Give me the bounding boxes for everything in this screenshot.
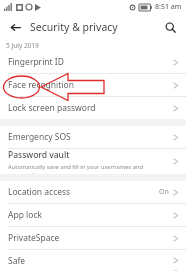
staticText: Safe (8, 255, 26, 267)
staticText: On (159, 187, 169, 197)
staticText: PrivateSpace (8, 232, 60, 244)
staticText: Password vault (8, 149, 70, 161)
staticText: 5 July 2019 (6, 41, 39, 50)
staticText: Security & privacy (30, 20, 118, 34)
staticText: Emergency SOS (8, 131, 71, 143)
button[interactable]: Password vault (0, 149, 186, 174)
staticText: Location access (8, 186, 71, 198)
staticText: 8:51 am (155, 2, 182, 12)
button[interactable]: Face recognition (0, 74, 186, 96)
button[interactable]: Safe (0, 250, 186, 271)
button[interactable]: Fingerprint ID (0, 51, 186, 73)
staticText: Lock screen password (8, 102, 96, 114)
staticText: Automatically save and fill in your user… (8, 163, 173, 174)
button[interactable]: App lock (0, 204, 186, 226)
button[interactable]: Search (160, 17, 180, 37)
staticText: Face recognition (8, 79, 74, 91)
staticText: App lock (8, 209, 43, 221)
button[interactable]: Back (5, 17, 25, 37)
staticText: Fingerprint ID (8, 56, 64, 68)
button[interactable]: Location access (0, 181, 186, 203)
button[interactable]: Emergency SOS (0, 126, 186, 148)
button[interactable]: PrivateSpace (0, 227, 186, 249)
button[interactable]: Lock screen password (0, 97, 186, 119)
